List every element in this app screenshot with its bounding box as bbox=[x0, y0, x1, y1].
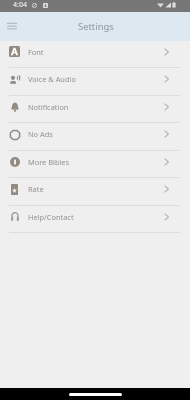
staticText: No Ads bbox=[28, 129, 53, 139]
button[interactable]: Notification bbox=[0, 96, 190, 123]
staticText: More Bibles bbox=[28, 157, 70, 167]
button[interactable]: Help/Contact bbox=[0, 206, 190, 233]
button[interactable]: Open navigation menu bbox=[0, 12, 23, 41]
staticText: Help/Contact bbox=[28, 212, 74, 222]
button[interactable]: Voice & Audio bbox=[0, 68, 190, 96]
button[interactable]: No Ads bbox=[0, 123, 190, 151]
button[interactable]: Rate bbox=[0, 178, 190, 206]
button[interactable]: More Bibles bbox=[0, 151, 190, 178]
staticText: 4:04 bbox=[13, 0, 27, 10]
staticText: Font bbox=[28, 47, 44, 57]
button[interactable]: Font bbox=[0, 41, 190, 68]
staticText: Voice & Audio bbox=[28, 74, 76, 84]
staticText: Settings bbox=[78, 20, 114, 33]
staticText: Notification bbox=[28, 102, 69, 112]
staticText: Rate bbox=[28, 184, 44, 194]
